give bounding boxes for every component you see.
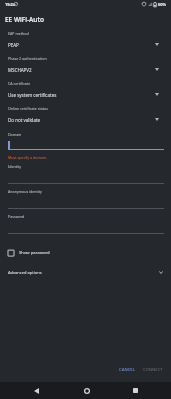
staticText: Show password [19, 250, 50, 256]
staticText: Advanced options [8, 270, 42, 275]
staticText: Must specify a domain. [8, 155, 47, 160]
button[interactable]: Online certificate status [0, 103, 171, 127]
staticText: CONNECT [143, 367, 163, 373]
button[interactable]: Show password [0, 244, 171, 261]
staticText: CA certificate [8, 81, 31, 86]
button[interactable]: Domain [0, 128, 171, 150]
staticText: PEAP [8, 42, 19, 48]
button[interactable]: CANCEL [117, 364, 137, 376]
staticText: Online certificate status [8, 106, 48, 111]
button[interactable]: Anonymous identity [0, 186, 171, 209]
button[interactable]: Back [28, 382, 45, 399]
staticText: 19:24 [5, 2, 15, 7]
button[interactable]: Identity [0, 161, 171, 184]
staticText: CANCEL [119, 367, 135, 373]
button[interactable]: Password [0, 211, 171, 234]
staticText: Phase 2 authentication [8, 56, 47, 61]
staticText: Identity [8, 164, 22, 169]
button[interactable]: CONNECT [141, 364, 165, 376]
button[interactable]: CA certificate [0, 78, 171, 102]
staticText: Do not validate [8, 117, 41, 123]
button[interactable]: Home [78, 382, 95, 399]
staticText: Anonymous identity [8, 189, 42, 194]
staticText: Use system certificates [8, 92, 57, 98]
button[interactable]: EAP method [0, 28, 171, 52]
button[interactable]: Phase 2 authentication [0, 53, 171, 77]
button[interactable]: Advanced options [0, 264, 171, 280]
staticText: Password [8, 214, 25, 219]
staticText: EE WiFi-Auto [5, 15, 44, 24]
button[interactable]: Recent apps [127, 382, 144, 399]
staticText: 50% [158, 2, 166, 7]
staticText: EAP method [8, 31, 29, 36]
staticText: MSCHAPV2 [8, 67, 32, 73]
staticText: Domain [8, 132, 22, 137]
